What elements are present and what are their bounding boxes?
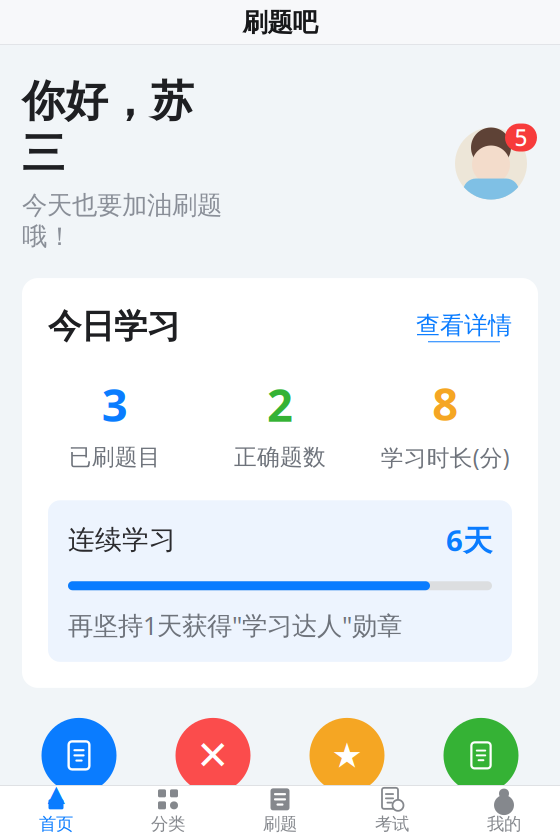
staticText: 刷题 — [54, 806, 104, 836]
staticText: 正确题数 — [234, 443, 326, 471]
staticText: 刷题吧 — [242, 7, 317, 38]
button[interactable]: 刷题 — [12, 718, 146, 836]
staticText: 今天也要加油刷题哦！ — [22, 190, 222, 252]
staticText: 5 — [514, 122, 527, 153]
staticText: ✕ — [196, 733, 230, 778]
staticText: 首页 — [39, 813, 73, 835]
staticText: 查看详情 — [416, 311, 512, 340]
button[interactable]: 模拟考试 — [414, 718, 548, 836]
staticText: 6天 — [446, 520, 492, 559]
staticText: 收藏夹 — [309, 806, 384, 836]
button[interactable]: 个人中心，5 条未读 — [440, 127, 542, 199]
staticText: 再坚持1天获得"学习达人"勋章 — [68, 608, 402, 642]
button[interactable]: ▲ — [0, 782, 112, 836]
button[interactable]: 查看详情 — [416, 311, 512, 342]
staticText: 我的 — [487, 813, 521, 835]
button[interactable]: 刷题 — [224, 782, 336, 836]
staticText: 已刷题目 — [69, 443, 161, 471]
staticText: 你好，苏三 — [22, 75, 194, 180]
button[interactable]: 分类 — [112, 782, 224, 836]
staticText: 连续学习 — [68, 523, 176, 556]
button[interactable]: 考试 — [336, 782, 448, 836]
staticText: 模拟考试 — [431, 806, 531, 836]
staticText: 分类 — [151, 813, 185, 835]
button[interactable]: ✕ — [146, 718, 280, 836]
staticText: ★ — [331, 736, 362, 775]
staticText: 学习时长(分) — [381, 442, 510, 472]
button[interactable]: ★ — [280, 718, 414, 836]
button[interactable]: 我的 — [448, 782, 560, 836]
staticText: 错题本 — [175, 806, 250, 836]
staticText: 考试 — [375, 813, 409, 835]
staticText: 刷题 — [263, 813, 297, 835]
staticText: 3 — [102, 374, 128, 434]
staticText: ▲ — [47, 780, 64, 806]
staticText: 2 — [267, 374, 293, 434]
staticText: 8 — [432, 373, 458, 433]
staticText: 今日学习 — [48, 306, 180, 347]
